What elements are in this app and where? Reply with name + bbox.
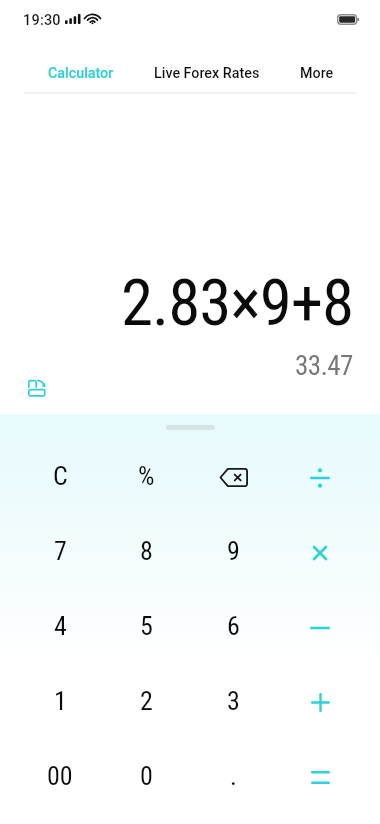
button[interactable]: % (103, 440, 189, 515)
staticText: % (138, 461, 155, 491)
staticText: 3 (227, 686, 240, 716)
staticText: 9 (227, 536, 240, 566)
button[interactable]: . (190, 740, 276, 815)
staticText: 7 (54, 536, 67, 566)
button[interactable]: 6 (190, 590, 276, 665)
staticText: 19:30 (23, 12, 61, 29)
button[interactable]: More (277, 45, 356, 92)
staticText: 5 (140, 611, 153, 641)
staticText: 2.83×9+8 (121, 265, 354, 341)
staticText: Live Forex Rates (154, 65, 260, 82)
button[interactable]: Backspace (190, 440, 276, 515)
button[interactable]: 1 (17, 665, 103, 740)
button[interactable]: Equals (277, 740, 363, 815)
button[interactable]: 7 (17, 515, 103, 590)
button[interactable]: Multiply (277, 515, 363, 590)
button[interactable]: 3 (190, 665, 276, 740)
button[interactable]: 0 (103, 740, 189, 815)
staticText: 6 (227, 611, 240, 641)
staticText: C (53, 461, 68, 491)
staticText: More (300, 65, 334, 82)
button[interactable]: 00 (17, 740, 103, 815)
button[interactable]: Conversion history (28, 379, 46, 397)
staticText: Calculator (48, 65, 114, 82)
button[interactable]: 2 (103, 665, 189, 740)
staticText: 2 (140, 686, 153, 716)
staticText: . (230, 761, 237, 791)
button[interactable]: 8 (103, 515, 189, 590)
button[interactable]: Add (277, 665, 363, 740)
staticText: 4 (54, 611, 67, 641)
staticText: 0 (140, 761, 153, 791)
staticText: 1 (54, 686, 67, 716)
staticText: 33.47 (295, 350, 353, 382)
button[interactable]: Divide (277, 440, 363, 515)
button[interactable]: C (17, 440, 103, 515)
button[interactable]: 5 (103, 590, 189, 665)
button[interactable]: Live Forex Rates (138, 45, 275, 92)
button[interactable]: Subtract (277, 590, 363, 665)
button[interactable]: 9 (190, 515, 276, 590)
staticText: 8 (140, 536, 153, 566)
staticText: 00 (47, 761, 73, 791)
button[interactable]: 4 (17, 590, 103, 665)
button[interactable]: Calculator (0, 45, 161, 92)
